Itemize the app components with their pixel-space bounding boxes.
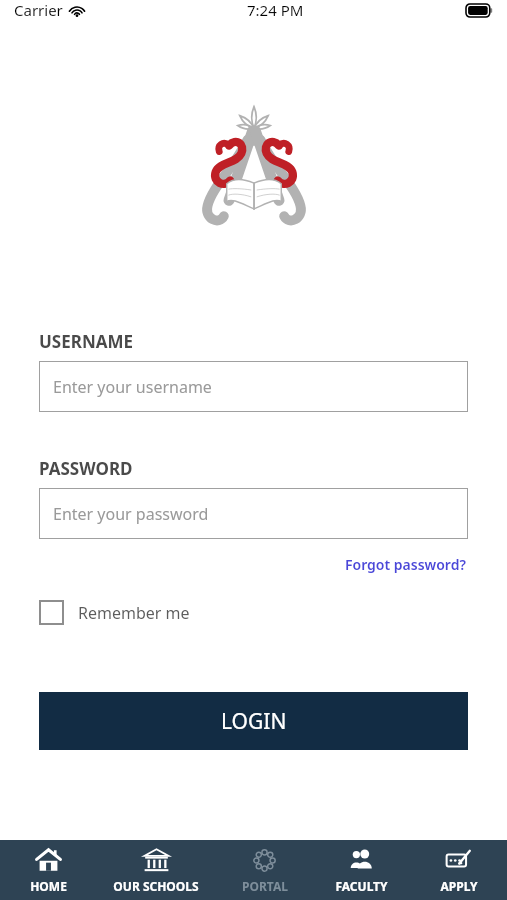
staticText: OUR SCHOOLS [113,878,199,894]
button[interactable]: LOGIN [39,692,468,750]
button[interactable]: HOME [0,840,96,900]
staticText: USERNAME [39,330,134,353]
button[interactable]: FACULTY [313,840,410,900]
staticText: FACULTY [335,878,388,894]
button[interactable]: Enter your username [39,361,468,412]
staticText: APPLY [440,878,478,894]
button[interactable]: APPLY [410,840,507,900]
button[interactable]: Enter your password [39,488,468,539]
staticText: LOGIN [221,707,287,736]
staticText: PASSWORD [39,457,133,480]
staticText: Carrier [14,0,63,20]
staticText: Enter your password [53,503,209,525]
button[interactable]: PORTAL [216,840,313,900]
button[interactable]: Remember me [39,596,190,629]
staticText: HOME [30,878,67,894]
button[interactable]: OUR SCHOOLS [96,840,216,900]
staticText: PORTAL [242,878,288,894]
staticText: 7:24 PM [247,0,304,20]
button[interactable]: Forgot password? [343,553,468,576]
staticText: Enter your username [53,376,212,398]
staticText: Remember me [78,602,190,624]
